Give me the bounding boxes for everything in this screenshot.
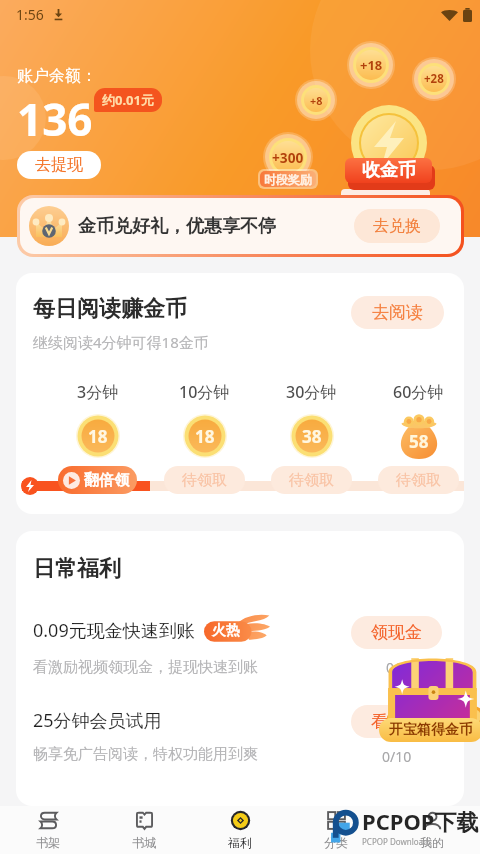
staticText: 18 xyxy=(195,425,215,448)
staticText: 去兑换 xyxy=(373,216,421,236)
button[interactable]: 开宝箱得金币 xyxy=(385,654,480,736)
staticText: 3分钟 xyxy=(77,381,119,403)
staticText: 收金币 xyxy=(362,159,416,182)
staticText: 看视频 xyxy=(371,711,422,732)
staticText: 每日阅读赚金币 xyxy=(33,295,187,323)
staticText: 书城 xyxy=(132,835,156,850)
staticText: 我的 xyxy=(420,835,444,850)
staticText: +18 xyxy=(360,56,383,74)
staticText: 福利 xyxy=(228,835,252,850)
staticText: 58 xyxy=(409,430,429,453)
staticText: 25分钟会员试用 xyxy=(33,708,162,733)
staticText: 0/1 xyxy=(386,658,408,677)
staticText: 领现金 xyxy=(371,622,422,643)
staticText: 畅享免广告阅读，特权功能用到爽 xyxy=(33,745,258,764)
staticText: 金币兑好礼，优惠享不停 xyxy=(78,215,276,238)
staticText: PCPOP下载 xyxy=(362,806,479,836)
button[interactable]: 待领取 xyxy=(164,466,245,494)
button[interactable]: 金币兑好礼，优惠享不停 xyxy=(20,198,461,254)
staticText: 待领取 xyxy=(289,471,334,490)
staticText: 书架 xyxy=(36,835,60,850)
staticText: 日常福利 xyxy=(33,555,121,583)
staticText: 去阅读 xyxy=(372,302,423,323)
staticText: 时段奖励 xyxy=(264,172,312,187)
staticText: 继续阅读4分钟可得18金币 xyxy=(33,332,209,352)
staticText: 火热 xyxy=(212,622,240,640)
button[interactable]: 领现金 xyxy=(351,616,442,649)
staticText: +300 xyxy=(272,148,304,167)
button[interactable]: 书架 xyxy=(0,806,96,854)
staticText: +28 xyxy=(424,71,444,87)
staticText: 0.09元现金快速到账 xyxy=(33,618,195,643)
staticText: 去提现 xyxy=(35,155,83,175)
staticText: 分类 xyxy=(324,835,348,850)
staticText: 30分钟 xyxy=(286,381,337,403)
button[interactable]: 待领取 xyxy=(378,466,459,494)
button[interactable]: 开宝箱得金币 xyxy=(379,718,480,742)
button[interactable]: 去阅读 xyxy=(351,296,444,329)
button[interactable]: 分类 xyxy=(288,806,384,854)
staticText: 136 xyxy=(17,89,93,149)
button[interactable]: 待领取 xyxy=(271,466,352,494)
staticText: 38 xyxy=(302,425,322,448)
staticText: 0/10 xyxy=(382,747,412,766)
staticText: 10分钟 xyxy=(179,381,230,403)
staticText: PCPOP Downloads xyxy=(362,836,432,847)
button[interactable]: 去兑换 xyxy=(354,209,440,243)
staticText: 1:56 xyxy=(16,5,44,24)
staticText: 账户余额： xyxy=(17,66,97,86)
staticText: 翻倍领 xyxy=(84,471,129,490)
button[interactable]: 福利 xyxy=(192,806,288,854)
button[interactable]: 书城 xyxy=(96,806,192,854)
button[interactable]: 去提现 xyxy=(17,151,101,179)
button[interactable]: 翻倍领 xyxy=(58,466,137,494)
button[interactable]: 看视频 xyxy=(351,705,442,738)
staticText: 待领取 xyxy=(396,471,441,490)
staticText: 60分钟 xyxy=(393,381,444,403)
staticText: 约0.01元 xyxy=(102,91,154,109)
button[interactable]: 我的 xyxy=(384,806,480,854)
staticText: 待领取 xyxy=(182,471,227,490)
staticText: 18 xyxy=(88,425,108,448)
staticText: 看激励视频领现金，提现快速到账 xyxy=(33,658,258,677)
staticText: 开宝箱得金币 xyxy=(389,721,473,739)
button[interactable]: 收金币 xyxy=(345,105,434,205)
staticText: +8 xyxy=(310,93,323,108)
